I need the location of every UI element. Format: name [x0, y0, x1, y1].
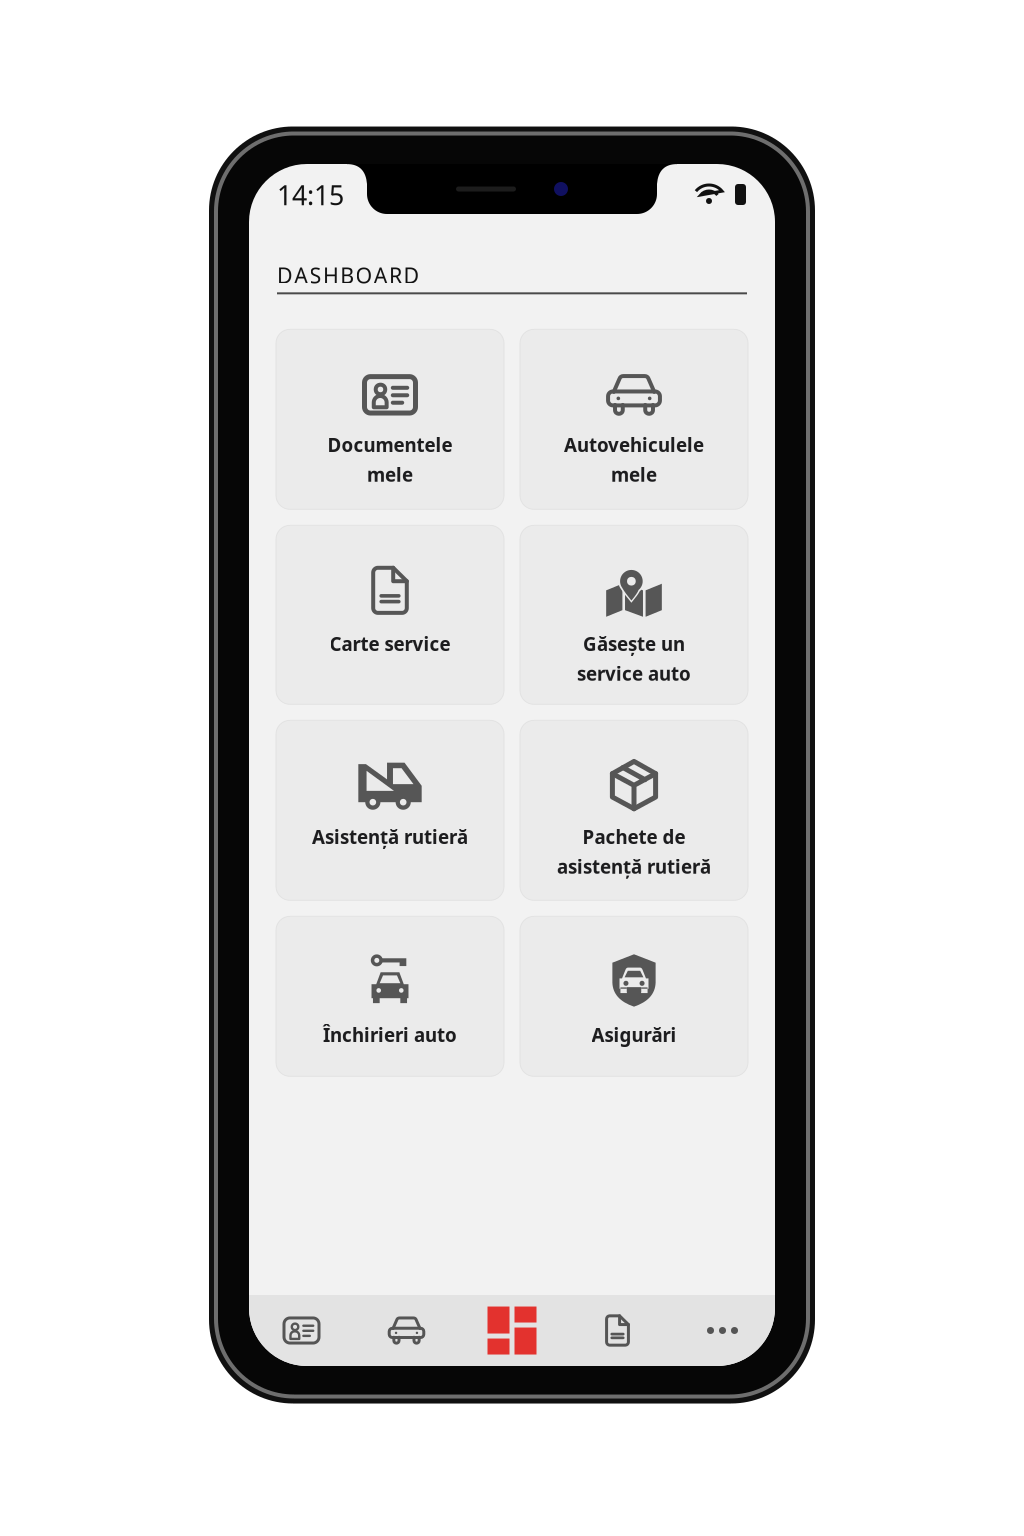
button[interactable]: Pachete de	[520, 720, 748, 900]
staticText: Carte service	[329, 631, 450, 656]
button[interactable]: Autovehiculele	[520, 329, 748, 509]
staticText: mele	[367, 462, 413, 487]
staticText: Documentele	[327, 432, 452, 457]
staticText: Pachete de	[582, 824, 685, 849]
staticText: S	[310, 261, 322, 289]
staticText: D	[277, 261, 293, 289]
staticText: A	[294, 261, 308, 289]
button[interactable]: Carte service	[565, 1295, 670, 1366]
staticText: mele	[611, 462, 657, 487]
staticText: R	[389, 261, 402, 289]
staticText: O	[355, 261, 372, 289]
staticText: D	[403, 261, 419, 289]
button[interactable]: Documentele mele	[249, 1295, 354, 1366]
staticText: Autovehiculele	[564, 432, 704, 457]
button[interactable]: Dashboard	[459, 1295, 565, 1366]
staticText: 14:15	[277, 177, 344, 213]
button[interactable]: Găsește un	[520, 525, 748, 704]
button[interactable]: Închirieri auto	[276, 916, 504, 1076]
staticText: H	[323, 261, 339, 289]
staticText: service auto	[577, 661, 691, 686]
staticText: A	[374, 261, 388, 289]
button[interactable]: Autovehiculele mele	[354, 1295, 459, 1366]
staticText: Închirieri auto	[323, 1022, 457, 1047]
staticText: Găsește un	[583, 631, 685, 656]
staticText: Asistență rutieră	[312, 824, 468, 849]
button[interactable]: Asigurări	[520, 916, 748, 1076]
button[interactable]: Carte service	[276, 525, 504, 704]
button[interactable]: Asistență rutieră	[276, 720, 504, 900]
button[interactable]: Documentele	[276, 329, 504, 509]
staticText: asistență rutieră	[557, 854, 711, 879]
button[interactable]: More	[670, 1295, 775, 1366]
staticText: B	[340, 261, 354, 289]
staticText: Asigurări	[591, 1022, 676, 1047]
